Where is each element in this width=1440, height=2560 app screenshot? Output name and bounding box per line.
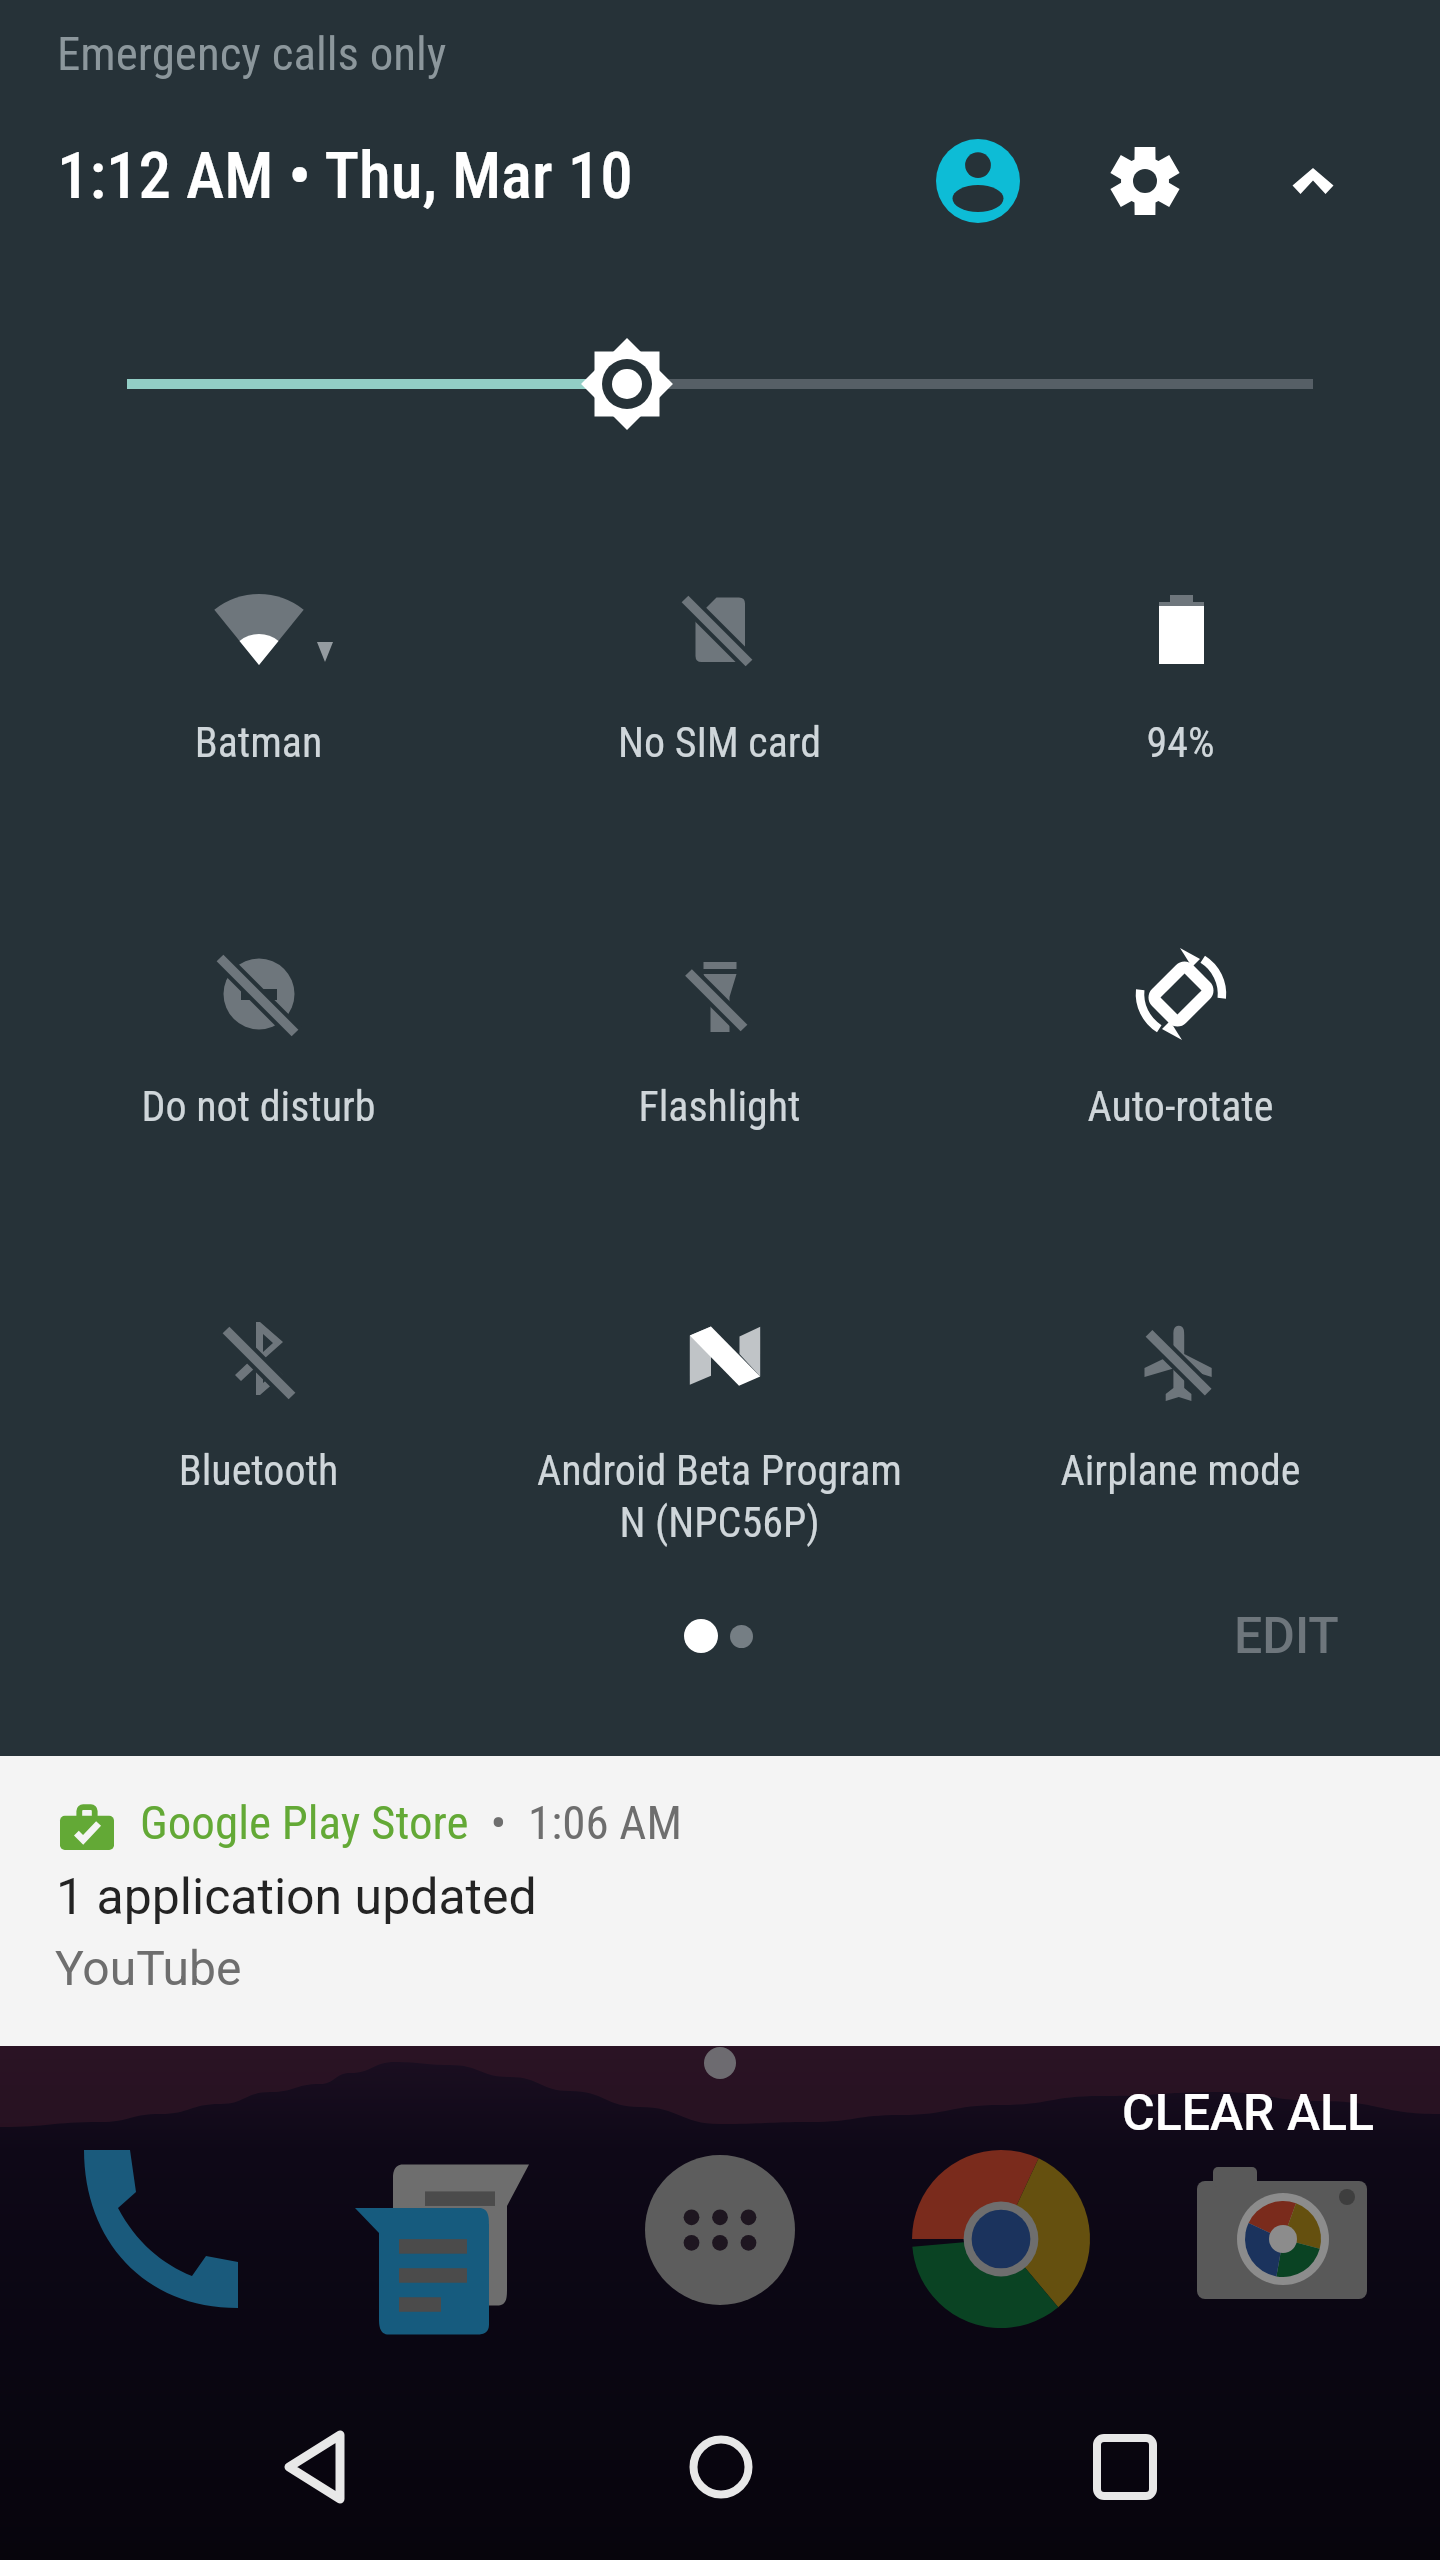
button[interactable]: CLEAR ALL <box>1098 2070 1399 2157</box>
staticText: Do not disturb <box>31 1082 486 1131</box>
button[interactable]: Settings <box>1089 125 1201 237</box>
button[interactable]: Do not disturb <box>31 874 486 1164</box>
staticText: Google Play Store <box>140 1795 469 1850</box>
staticText: • 1:06 AM <box>469 1795 682 1850</box>
button[interactable]: Batman <box>31 510 486 800</box>
button[interactable]: Android Beta Program N (NPC56P) <box>492 1238 947 1528</box>
staticText: 1 application updated <box>56 1868 537 1927</box>
button[interactable]: Airplane mode <box>953 1238 1408 1528</box>
staticText: EDIT <box>1234 1607 1339 1666</box>
button[interactable]: Recent apps <box>1005 2374 1245 2560</box>
button[interactable]: Auto-rotate <box>953 874 1408 1164</box>
staticText: Auto-rotate <box>953 1082 1408 1131</box>
button[interactable]: No SIM card <box>492 510 947 800</box>
staticText: Android Beta Program N (NPC56P) <box>492 1446 947 1547</box>
button[interactable]: 94% <box>953 510 1408 800</box>
button[interactable]: Brightness <box>0 324 1440 444</box>
staticText: No SIM card <box>492 718 947 767</box>
button[interactable]: Bluetooth <box>31 1238 486 1528</box>
button[interactable]: Collapse quick settings <box>1257 125 1369 237</box>
button[interactable]: Flashlight <box>492 874 947 1164</box>
button[interactable]: Home <box>601 2374 841 2560</box>
staticText: Airplane mode <box>953 1446 1408 1495</box>
staticText: Bluetooth <box>31 1446 486 1495</box>
staticText: 1:12 AM • Thu, Mar 10 <box>57 138 633 214</box>
staticText: Batman <box>31 718 486 767</box>
staticText: 94% <box>953 718 1408 767</box>
staticText: Flashlight <box>492 1082 947 1131</box>
button[interactable]: Google Play Store <box>0 1756 1440 2046</box>
button[interactable]: EDIT <box>1204 1583 1369 1690</box>
button[interactable]: Back <box>196 2374 436 2560</box>
staticText: Emergency calls only <box>57 26 447 81</box>
staticText: YouTube <box>55 1940 242 1996</box>
staticText: CLEAR ALL <box>1122 2084 1375 2143</box>
button[interactable]: User profile <box>922 125 1034 237</box>
